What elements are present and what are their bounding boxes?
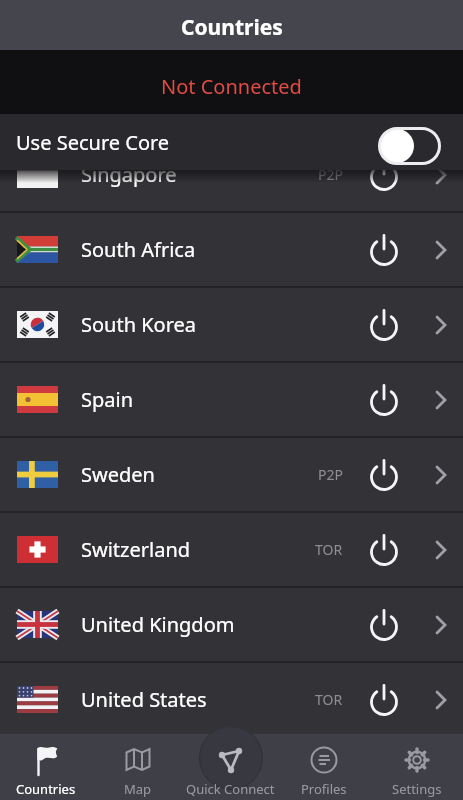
staticText: TOR: [315, 690, 343, 709]
staticText: Singapore: [81, 161, 177, 188]
staticText: Quick Connect: [186, 780, 275, 798]
staticText: P2P: [318, 465, 343, 484]
staticText: TOR: [315, 540, 343, 559]
staticText: South Korea: [81, 311, 197, 338]
staticText: Map: [124, 780, 152, 798]
button[interactable]: [378, 127, 441, 165]
staticText: South Africa: [81, 236, 196, 263]
button[interactable]: United Kingdom: [0, 588, 463, 663]
button[interactable]: Profiles: [277, 734, 370, 800]
staticText: P2P: [318, 165, 343, 184]
button[interactable]: Spain: [0, 363, 463, 438]
button[interactable]: Settings: [370, 734, 463, 800]
button[interactable]: South Africa: [0, 213, 463, 288]
staticText: Countries: [16, 780, 76, 798]
staticText: Switzerland: [81, 536, 191, 563]
button[interactable]: Switzerland: [0, 513, 463, 588]
staticText: Sweden: [81, 461, 155, 488]
staticText: Settings: [392, 780, 442, 798]
button[interactable]: Map: [92, 734, 184, 800]
staticText: United States: [81, 686, 207, 713]
button[interactable]: Singapore: [0, 138, 463, 213]
button[interactable]: Use Secure Core: [0, 114, 463, 170]
staticText: Spain: [81, 386, 134, 413]
staticText: Countries: [181, 13, 283, 42]
button[interactable]: Sweden: [0, 438, 463, 513]
button[interactable]: United States: [0, 663, 463, 738]
button[interactable]: Quick Connect: [184, 734, 277, 800]
staticText: Not Connected: [161, 73, 302, 100]
button[interactable]: Countries: [0, 734, 92, 800]
staticText: Use Secure Core: [16, 129, 170, 156]
staticText: United Kingdom: [81, 611, 235, 638]
button[interactable]: South Korea: [0, 288, 463, 363]
staticText: Profiles: [301, 780, 347, 798]
